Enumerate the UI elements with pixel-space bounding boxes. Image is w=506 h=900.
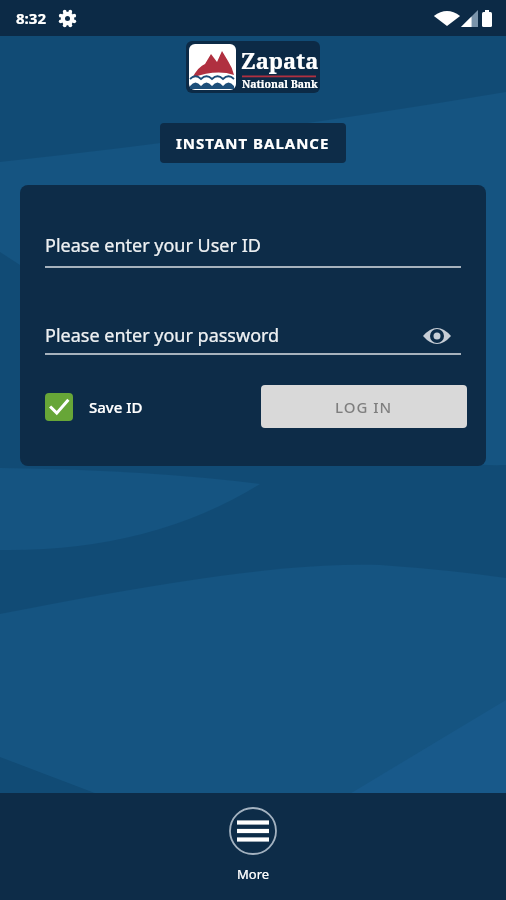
- staticText: Please enter your password: [45, 323, 280, 348]
- staticText: Save ID: [89, 397, 143, 417]
- button[interactable]: Save ID: [45, 393, 143, 421]
- staticText: LOG IN: [335, 397, 393, 417]
- button[interactable]: INSTANT BALANCE: [160, 123, 346, 163]
- staticText: Zapata: [241, 45, 319, 75]
- staticText: INSTANT BALANCE: [176, 133, 330, 153]
- button[interactable]: LOG IN: [261, 385, 467, 428]
- button[interactable]: [423, 325, 451, 347]
- button[interactable]: Please enter your User ID: [45, 233, 461, 258]
- staticText: Please enter your User ID: [45, 233, 261, 258]
- staticText: More: [237, 865, 270, 883]
- staticText: National Bank: [242, 77, 318, 91]
- button[interactable]: Please enter your password: [45, 323, 423, 348]
- staticText: 8:32: [16, 8, 46, 28]
- button[interactable]: More: [228, 806, 278, 883]
